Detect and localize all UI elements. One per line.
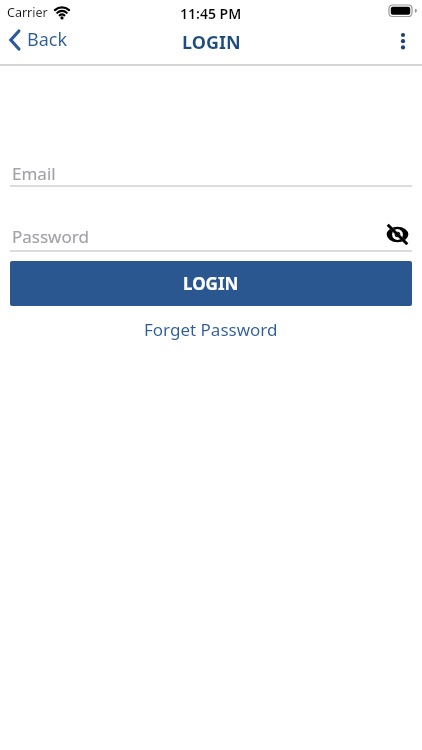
staticText: Forget Password bbox=[144, 318, 278, 341]
staticText: Carrier bbox=[7, 4, 48, 21]
button[interactable]: Password bbox=[0, 218, 422, 252]
staticText: Email bbox=[12, 162, 56, 185]
staticText: Back bbox=[27, 27, 68, 52]
staticText: LOGIN bbox=[183, 272, 239, 295]
staticText: Password bbox=[12, 225, 89, 248]
button[interactable]: Back bbox=[8, 27, 68, 52]
staticText: LOGIN bbox=[182, 30, 241, 55]
button[interactable] bbox=[383, 221, 413, 249]
staticText: 11:45 PM bbox=[180, 4, 242, 23]
button[interactable]: Email bbox=[0, 155, 422, 187]
button[interactable]: LOGIN bbox=[10, 261, 412, 306]
button[interactable]: Forget Password bbox=[144, 318, 278, 341]
button[interactable] bbox=[392, 27, 414, 55]
